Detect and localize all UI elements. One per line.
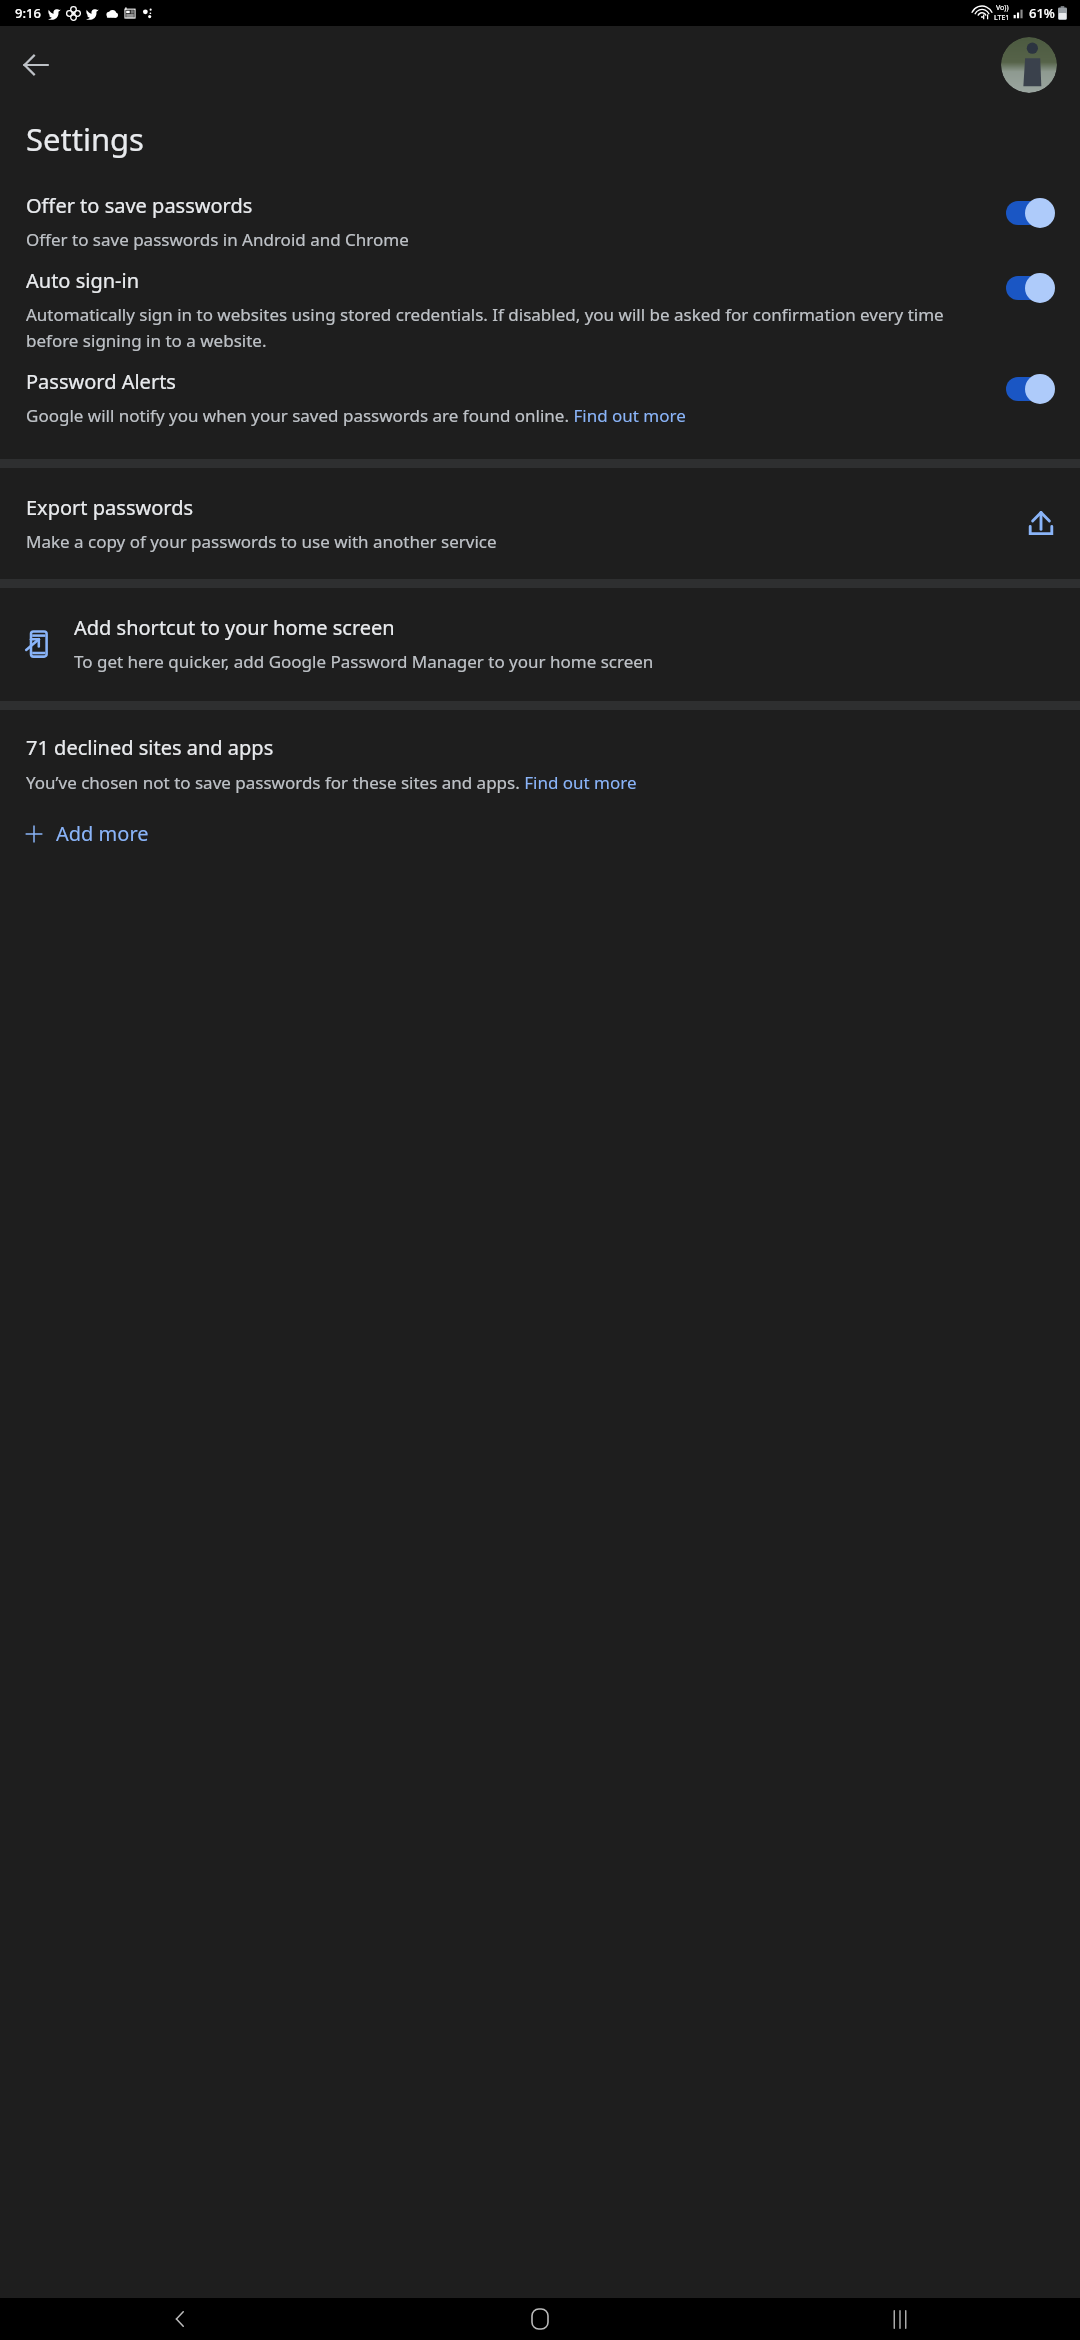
button[interactable]: 71 declined sites and apps bbox=[0, 734, 1080, 794]
staticText: LTE1 bbox=[994, 13, 1010, 23]
button[interactable]: Recents bbox=[720, 2298, 1080, 2340]
staticText: Settings bbox=[26, 118, 144, 160]
button[interactable]: Account bbox=[1001, 37, 1057, 93]
staticText: 71 declined sites and apps bbox=[26, 734, 274, 761]
staticText: Vo)) bbox=[996, 3, 1009, 13]
button[interactable]: Offer to save passwords bbox=[0, 186, 1080, 261]
other: Export bbox=[1026, 509, 1056, 539]
staticText: Password Alerts bbox=[26, 368, 176, 395]
staticText: To get here quicker, add Google Password… bbox=[74, 650, 654, 673]
button[interactable]: Back bbox=[0, 2298, 360, 2340]
button[interactable]: Back bbox=[12, 41, 60, 89]
staticText: 9:16 bbox=[15, 4, 41, 22]
button[interactable]: Add more bbox=[0, 814, 169, 853]
staticText: Auto sign-in bbox=[26, 267, 140, 294]
button[interactable]: Password Alerts bbox=[0, 362, 1080, 437]
staticText: Export passwords bbox=[26, 494, 194, 521]
staticText: You’ve chosen not to save passwords for … bbox=[26, 771, 637, 794]
button[interactable]: Add shortcut bbox=[0, 588, 1080, 701]
staticText: Make a copy of your passwords to use wit… bbox=[26, 530, 497, 553]
button[interactable]: Export passwords bbox=[0, 468, 1080, 579]
staticText: Offer to save passwords in Android and C… bbox=[26, 228, 409, 251]
staticText: Automatically sign in to websites using … bbox=[26, 303, 986, 352]
staticText: Offer to save passwords bbox=[26, 192, 253, 219]
button[interactable]: Home bbox=[360, 2298, 720, 2340]
staticText: Add shortcut to your home screen bbox=[74, 614, 395, 641]
other: Add shortcut bbox=[22, 629, 52, 659]
staticText: Google will notify you when your saved p… bbox=[26, 404, 686, 427]
staticText: Add more bbox=[56, 820, 149, 847]
staticText: 61% bbox=[1029, 4, 1055, 22]
button[interactable]: Auto sign-in bbox=[0, 261, 1080, 362]
